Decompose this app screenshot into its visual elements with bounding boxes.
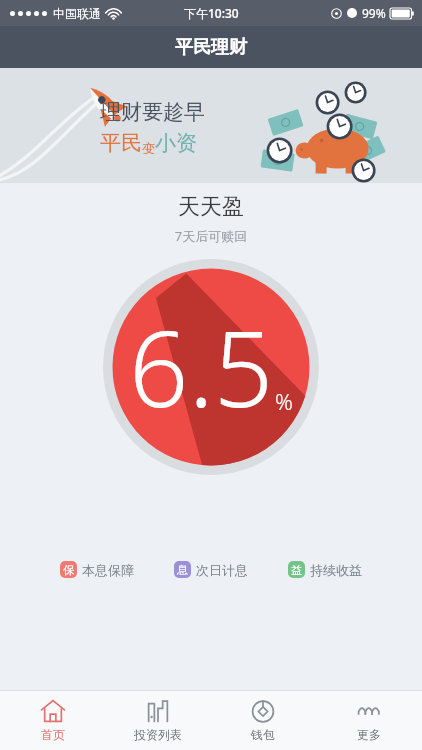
button[interactable]: 保 — [58, 559, 136, 580]
staticText: 下午10:30 — [184, 5, 239, 21]
staticText: 中国联通 — [53, 6, 101, 21]
button[interactable]: 首页 — [0, 691, 105, 750]
button[interactable]: 钱包 — [210, 691, 316, 750]
button[interactable]: 益 — [286, 559, 364, 580]
button[interactable]: 投资列表 — [105, 691, 210, 750]
staticText: 99% — [362, 5, 386, 21]
staticText: 变 — [142, 140, 155, 156]
staticText: % — [275, 386, 293, 416]
staticText: 持续收益 — [310, 562, 362, 578]
staticText: 息 — [177, 563, 188, 577]
button[interactable]: 息 — [172, 559, 250, 580]
staticText: 平民 — [100, 130, 142, 156]
button[interactable]: 理财要趁早 — [0, 68, 422, 183]
staticText: 更多 — [357, 727, 381, 742]
staticText: 天天盈 — [0, 193, 422, 221]
button[interactable]: 6.5 — [103, 259, 319, 475]
button[interactable]: 更多 — [316, 691, 422, 750]
staticText: 小资 — [155, 130, 197, 156]
staticText: 7天后可赎回 — [0, 227, 422, 245]
staticText: 益 — [291, 563, 302, 577]
staticText: 投资列表 — [134, 727, 182, 742]
staticText: 平民理财 — [175, 36, 247, 59]
staticText: 首页 — [41, 727, 65, 742]
staticText: 本息保障 — [82, 562, 134, 578]
staticText: 钱包 — [251, 727, 275, 742]
staticText: 6.5 — [129, 296, 274, 438]
staticText: 次日计息 — [196, 562, 248, 578]
staticText: 理财要趁早 — [100, 99, 205, 125]
staticText: 保 — [63, 563, 74, 577]
